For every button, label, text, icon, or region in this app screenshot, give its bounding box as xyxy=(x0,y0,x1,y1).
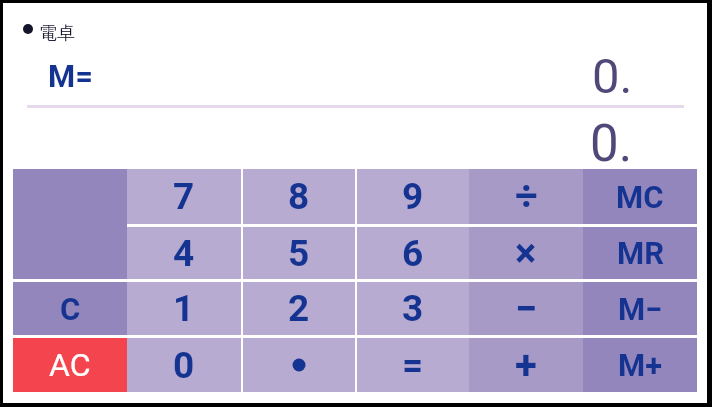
button[interactable]: 5 xyxy=(243,227,355,279)
staticText: = xyxy=(402,344,424,387)
button[interactable]: 4 xyxy=(127,227,241,279)
staticText: M+ xyxy=(618,347,663,383)
staticText: 7 xyxy=(173,175,195,218)
staticText: + xyxy=(515,342,537,389)
button[interactable]: MR xyxy=(583,227,697,279)
staticText: 電卓 xyxy=(39,22,75,45)
staticText: M− xyxy=(618,291,663,327)
staticText: 4 xyxy=(173,232,195,275)
staticText: 3 xyxy=(402,287,424,330)
staticText: C xyxy=(60,291,81,327)
staticText: AC xyxy=(49,346,91,384)
staticText: 5 xyxy=(288,232,310,275)
staticText: M= xyxy=(48,58,93,94)
staticText: 0 xyxy=(173,344,195,387)
staticText: − xyxy=(515,285,538,332)
staticText: 9 xyxy=(402,175,424,218)
button[interactable]: AC xyxy=(13,338,127,392)
staticText: 8 xyxy=(288,175,310,218)
button[interactable]: 0 xyxy=(127,338,241,392)
button[interactable]: M+ xyxy=(583,338,697,392)
button[interactable]: − xyxy=(469,282,583,335)
staticText: 0. xyxy=(590,114,633,174)
button[interactable] xyxy=(243,338,355,392)
button[interactable]: M− xyxy=(583,282,697,335)
button[interactable]: 3 xyxy=(357,282,469,335)
button[interactable]: = xyxy=(357,338,469,392)
button[interactable]: C xyxy=(13,282,127,335)
staticText: MR xyxy=(617,235,664,271)
button[interactable]: × xyxy=(469,227,583,279)
staticText: 1 xyxy=(173,287,195,330)
button[interactable]: 6 xyxy=(357,227,469,279)
staticText: 0. xyxy=(592,48,633,105)
staticText: ÷ xyxy=(515,173,538,220)
button[interactable]: MC xyxy=(583,169,697,224)
button[interactable]: + xyxy=(469,338,583,392)
button[interactable]: 2 xyxy=(243,282,355,335)
staticText: 6 xyxy=(402,232,424,275)
button[interactable]: 8 xyxy=(243,169,355,224)
button[interactable]: ÷ xyxy=(469,169,583,224)
button[interactable]: 9 xyxy=(357,169,469,224)
staticText: × xyxy=(515,230,537,277)
staticText: 2 xyxy=(288,287,310,330)
button[interactable]: 1 xyxy=(127,282,241,335)
staticText: MC xyxy=(616,179,664,215)
button[interactable]: 7 xyxy=(127,169,241,224)
